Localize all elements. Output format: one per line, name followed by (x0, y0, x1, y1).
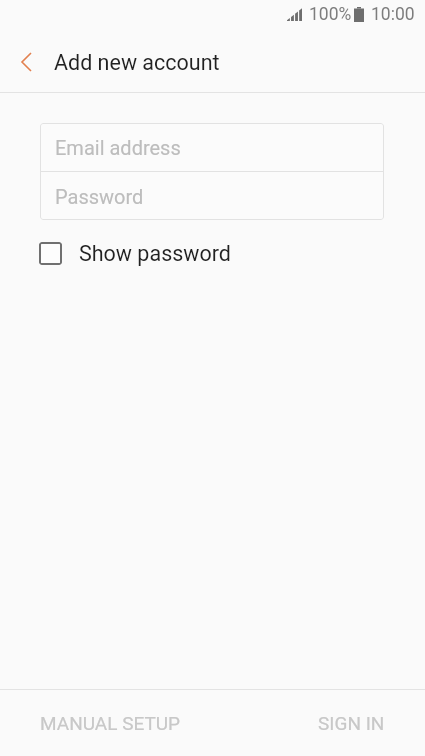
staticText: Password (55, 185, 144, 208)
button[interactable]: Password (40, 172, 384, 220)
staticText: Add new account (54, 50, 220, 75)
button[interactable]: MANUAL SETUP (0, 690, 213, 756)
staticText: MANUAL SETUP (40, 712, 181, 734)
staticText: Email address (55, 136, 181, 159)
staticText: 100% (309, 4, 352, 25)
button[interactable]: Email address (40, 123, 384, 171)
button[interactable]: Back (0, 31, 55, 92)
staticText: SIGN IN (318, 712, 385, 734)
button[interactable]: Show password (39, 237, 231, 269)
button[interactable]: SIGN IN (212, 690, 425, 756)
staticText: 10:00 (371, 4, 415, 25)
staticText: Show password (79, 241, 231, 266)
